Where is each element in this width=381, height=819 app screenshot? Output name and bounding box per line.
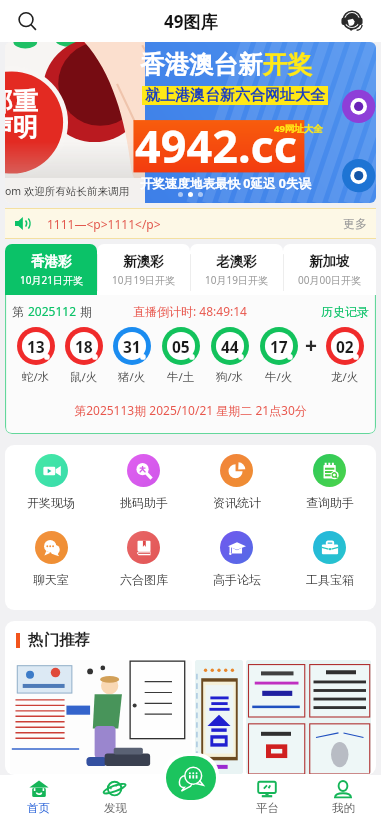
staticText: 猪/火 [118,369,146,385]
staticText: 牛/火 [265,369,293,385]
staticText: 2025112 [28,303,77,319]
button[interactable]: 老澳彩 [190,244,283,295]
button[interactable]: 发现 [77,775,153,819]
button[interactable]: 聊天室 [5,531,97,587]
button[interactable]: 高手论坛 [190,531,283,587]
staticText: 牛/土 [167,369,195,385]
staticText: 聊天室 [33,572,69,587]
button[interactable]: 郑重 [5,42,376,203]
staticText: 新澳彩 [123,253,164,270]
staticText: 高手论坛 [213,572,261,587]
button[interactable] [10,660,192,774]
button[interactable]: 工具宝箱 [283,531,376,587]
staticText: 49网址大全 [274,122,323,135]
staticText: 新加坡 [309,253,350,270]
staticText: 狗/水 [216,369,244,385]
staticText: 第2025113期 2025/10/21 星期二 21点30分 [12,402,369,418]
staticText: 首页 [27,801,50,815]
staticText: 老澳彩 [216,253,257,270]
staticText: 平台 [256,801,279,815]
staticText: 02 [336,336,354,357]
staticText: 1111—<p>1111</p> [47,216,343,232]
staticText: om 欢迎所有站长前来调用 [5,184,129,198]
staticText: + [305,331,318,360]
staticText: 龙/火 [331,369,359,385]
staticText: 发现 [104,801,127,815]
button[interactable]: 查询助手 [283,454,376,510]
button[interactable]: 六合图库 [97,531,190,587]
button[interactable] [195,660,243,774]
staticText: 第 [12,303,28,319]
staticText: 10月19日开奖 [112,273,175,287]
staticText: 六合图库 [120,572,168,587]
staticText: 蛇/水 [22,369,50,385]
staticText: 鼠/火 [70,369,98,385]
staticText: 挑码助手 [120,495,168,510]
staticText: 31 [123,336,141,357]
staticText: 查询助手 [306,495,354,510]
staticText: 香港澳台新 [140,49,263,80]
staticText: 开奖速度地表最快 0延迟 0失误 [140,175,311,192]
button[interactable] [246,660,371,774]
staticText: 44 [221,336,239,357]
button[interactable]: 挑码助手 [97,454,190,510]
staticText: 13 [27,336,45,357]
staticText: 4942.cc [135,115,298,176]
staticText: 期 [77,303,93,319]
staticText: 10月21日开奖 [20,273,83,287]
staticText: 工具宝箱 [306,572,354,587]
staticText: 声明 [5,112,38,143]
staticText: 开奖现场 [27,495,75,510]
button[interactable]: 新澳彩 [97,244,190,295]
button[interactable]: 我的 [305,775,381,819]
button[interactable]: 首页 [0,775,77,819]
button[interactable]: Search [8,2,46,40]
staticText: 开奖 [263,49,312,80]
button[interactable]: 1111—<p>1111</p> [14,208,367,239]
staticText: 资讯统计 [213,495,261,510]
button[interactable]: 聊天室 [166,756,216,800]
staticText: 更多 [343,216,367,231]
staticText: 17 [270,336,288,357]
button[interactable]: 资讯统计 [190,454,283,510]
staticText: 直播倒计时: 48:49:14 [133,303,247,319]
staticText: 香港彩 [31,253,72,270]
staticText: 热门推荐 [28,630,90,650]
staticText: 49图库 [164,10,218,33]
staticText: 我的 [332,801,355,815]
staticText: 就上港澳台新六合网址大全 [145,86,325,105]
staticText: 18 [75,336,93,357]
button[interactable]: 平台 [229,775,305,819]
staticText: 郑重 [5,86,38,117]
button[interactable]: 开奖现场 [5,454,97,510]
staticText: 05 [172,336,190,357]
button[interactable]: 历史记录 [321,304,369,319]
button[interactable]: Customer service [335,4,369,38]
button[interactable]: 香港彩 [5,244,97,295]
staticText: 10月19日开奖 [205,273,268,287]
staticText: 00月00日开奖 [298,273,361,287]
button[interactable]: 新加坡 [283,244,376,295]
